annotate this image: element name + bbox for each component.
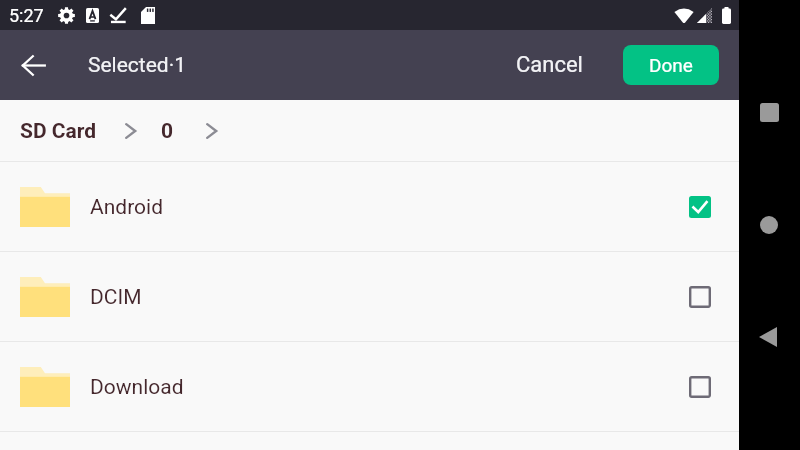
button[interactable]: 0 — [159, 111, 176, 152]
button[interactable]: Cancel — [502, 42, 597, 88]
button[interactable]: Recents — [741, 84, 797, 140]
button[interactable]: Done — [623, 45, 719, 85]
staticText: 0 — [161, 119, 174, 144]
staticText: Android — [90, 195, 163, 220]
button[interactable]: Back — [11, 43, 55, 87]
staticText: Download — [90, 375, 184, 400]
staticText: DCIM — [90, 285, 142, 310]
staticText: 5:27 — [9, 5, 44, 26]
staticText: Done — [649, 54, 693, 76]
button[interactable]: Back — [740, 309, 796, 365]
staticText: Cancel — [516, 52, 583, 78]
button[interactable]: Android — [0, 162, 739, 252]
button[interactable]: Home — [741, 197, 797, 253]
button[interactable]: SD Card — [18, 111, 99, 152]
button[interactable]: Download — [0, 342, 739, 432]
button[interactable]: DCIM — [0, 252, 739, 342]
staticText: Selected·1 — [88, 53, 186, 78]
staticText: SD Card — [20, 119, 97, 144]
